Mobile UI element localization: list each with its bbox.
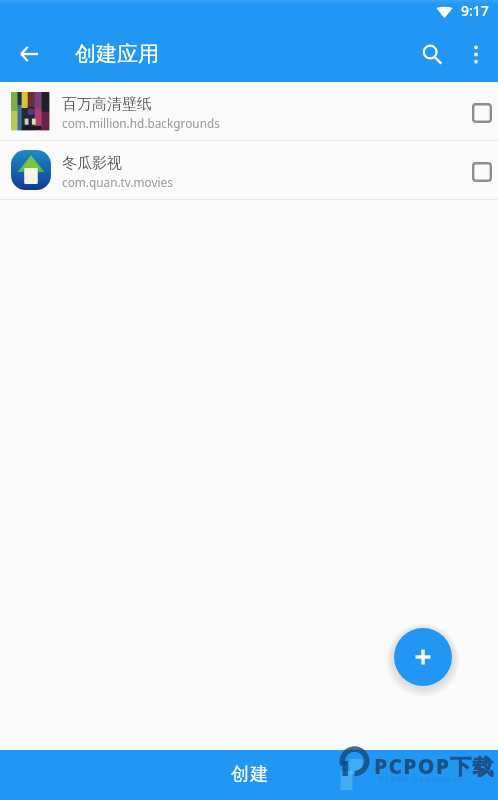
button[interactable]: 百万高清壁纸 [0,82,498,140]
button[interactable]: Select app [466,97,498,129]
staticText: 冬瓜影视 [62,154,122,173]
staticText: PCPOP下载 [374,752,495,781]
staticText: com.quan.tv.movies [62,174,173,190]
staticText: 创建应用 [75,41,159,67]
button[interactable]: 冬瓜影视 [0,141,498,199]
staticText: PCPOP Download [379,774,458,784]
staticText: com.million.hd.backgrounds [62,115,220,131]
staticText: 百万高清壁纸 [62,95,152,114]
staticText: 创建 [230,763,269,786]
button[interactable]: Search [411,33,453,75]
button[interactable]: Add [394,628,452,686]
button[interactable]: More options [456,34,496,74]
button[interactable]: Back [14,39,44,69]
button[interactable]: 创建 [0,750,498,800]
button[interactable]: Select app [466,156,498,188]
staticText: 9:17 [461,1,489,20]
